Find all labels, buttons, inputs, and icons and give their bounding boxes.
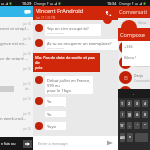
staticText: jun 15 bbox=[23, 82, 31, 86]
staticText: 10:29 bbox=[22, 1, 32, 6]
staticText: B bbox=[124, 44, 128, 52]
staticText: +336 bbox=[124, 44, 133, 49]
button[interactable]: 4 bbox=[142, 100, 148, 107]
button[interactable]: " bbox=[142, 122, 148, 129]
staticText: Yep on s'en occupe bi? bbox=[47, 26, 89, 31]
button[interactable]: e fuis ou bbox=[0, 137, 33, 150]
staticText: 1/3 bbox=[120, 123, 125, 128]
staticText: jun 16 bbox=[23, 37, 31, 41]
staticText: Vincent FrAndroid bbox=[36, 7, 84, 15]
staticText: Jun 27 7:58 PM bbox=[47, 46, 64, 49]
staticText: Jun 16 3:35 PM bbox=[47, 104, 64, 107]
button[interactable]: $ bbox=[142, 111, 148, 118]
staticText: B bbox=[124, 59, 128, 67]
staticText: Denjs bbox=[134, 73, 143, 78]
button[interactable]: Yo bbox=[45, 97, 66, 107]
button[interactable]: jun 14 bbox=[0, 122, 33, 137]
button[interactable]: ABC bbox=[120, 133, 125, 142]
button[interactable]: Send bbox=[107, 140, 113, 146]
staticText: jun 14 bbox=[23, 127, 31, 131]
staticText: jun 16 bbox=[23, 67, 31, 71]
button[interactable]: B bbox=[118, 25, 150, 40]
staticText: * bbox=[129, 135, 131, 140]
staticText: 2 bbox=[128, 101, 131, 106]
staticText: 3 bbox=[136, 101, 139, 106]
button[interactable]: jun 15 bbox=[0, 107, 33, 122]
button[interactable]: @ bbox=[127, 111, 132, 118]
staticText: B bbox=[124, 74, 128, 82]
staticText: B bbox=[124, 104, 128, 112]
staticText: greve est en... bbox=[0, 41, 28, 47]
button[interactable]: jun 15 bbox=[0, 92, 33, 107]
staticText: $ bbox=[144, 112, 147, 117]
button[interactable]: Ma: Pas de date de sortie et pas de prix bbox=[33, 53, 100, 72]
staticText: Kikoo ! bbox=[124, 55, 136, 60]
staticText: @ bbox=[128, 112, 132, 117]
button[interactable]: As tu ou recuperer un exemplaire? bbox=[45, 39, 118, 50]
staticText: ur de retard ... bbox=[0, 56, 28, 62]
staticText: Denjs bbox=[134, 88, 143, 93]
staticText: Yoyo bbox=[47, 124, 56, 129]
button[interactable]: New conversation bbox=[24, 9, 31, 15]
button[interactable]: 1/3 bbox=[120, 122, 125, 129]
staticText: jun 16 bbox=[23, 52, 31, 56]
button[interactable]: Yo bbox=[45, 111, 66, 117]
staticText: e fuis ou bbox=[1, 141, 16, 146]
staticText: Messa bbox=[138, 21, 147, 25]
staticText: de... bbox=[25, 87, 31, 91]
staticText: ABC bbox=[120, 135, 125, 140]
staticText: Orange F bbox=[34, 1, 49, 6]
button[interactable]: jun 16 bbox=[0, 32, 33, 47]
button[interactable]: Call bbox=[105, 10, 112, 17]
staticText: Conversation bbox=[134, 79, 150, 83]
staticText: Jun 27 1:03 PM bbox=[36, 16, 56, 20]
staticText: Orange F bbox=[119, 1, 134, 6]
button[interactable]: B bbox=[118, 70, 150, 85]
staticText: 10:34 bbox=[107, 1, 117, 6]
button[interactable]: +336 bbox=[122, 41, 150, 66]
staticText: Jun 27 7:58 PM bbox=[47, 31, 64, 34]
button[interactable]: jun 16 bbox=[0, 17, 33, 32]
staticText: Debut juillet en France, 599 eu pour le … bbox=[47, 78, 91, 94]
button[interactable]: B bbox=[118, 40, 150, 55]
staticText: 1 bbox=[121, 101, 124, 106]
button[interactable]: ' bbox=[134, 122, 140, 129]
staticText: - bbox=[129, 123, 131, 128]
staticText: 4 bbox=[144, 101, 147, 106]
staticText: Yo bbox=[47, 112, 52, 117]
button[interactable]: Next bbox=[23, 140, 32, 148]
button[interactable]: 2 bbox=[127, 100, 132, 107]
button[interactable]: * bbox=[127, 133, 133, 142]
staticText: jun 15 bbox=[23, 97, 31, 101]
staticText: Compose bbox=[120, 31, 145, 39]
staticText: B bbox=[124, 29, 128, 37]
button[interactable]: jun 15 bbox=[0, 77, 33, 92]
staticText: jun 15 bbox=[23, 112, 31, 116]
button[interactable]: Enter a message bbox=[33, 136, 118, 150]
button[interactable]: Debut juillet en France, 599 eu pour le … bbox=[45, 76, 93, 94]
button[interactable]: B bbox=[118, 85, 150, 100]
button[interactable]: jun 16 bbox=[0, 62, 33, 77]
button[interactable]: 3 bbox=[134, 100, 140, 107]
button[interactable]: 1 bbox=[120, 100, 125, 107]
staticText: Conversations bbox=[119, 8, 150, 16]
button[interactable]: jun 16 bbox=[0, 47, 33, 62]
button[interactable]: # bbox=[134, 111, 140, 118]
staticText: Conversation bbox=[134, 34, 150, 38]
button[interactable]: Yep on s'en occupe bi? bbox=[45, 24, 101, 36]
button[interactable]: B bbox=[118, 100, 150, 115]
button[interactable]: B bbox=[118, 55, 150, 70]
button[interactable]: Yoyo bbox=[45, 122, 66, 130]
button[interactable]: ! bbox=[120, 111, 125, 118]
staticText: As tu ou recuperer un exemplaire? bbox=[47, 41, 112, 46]
staticText: ! bbox=[122, 112, 123, 117]
button[interactable]: - bbox=[127, 122, 132, 129]
staticText: Conversation bbox=[134, 64, 150, 68]
